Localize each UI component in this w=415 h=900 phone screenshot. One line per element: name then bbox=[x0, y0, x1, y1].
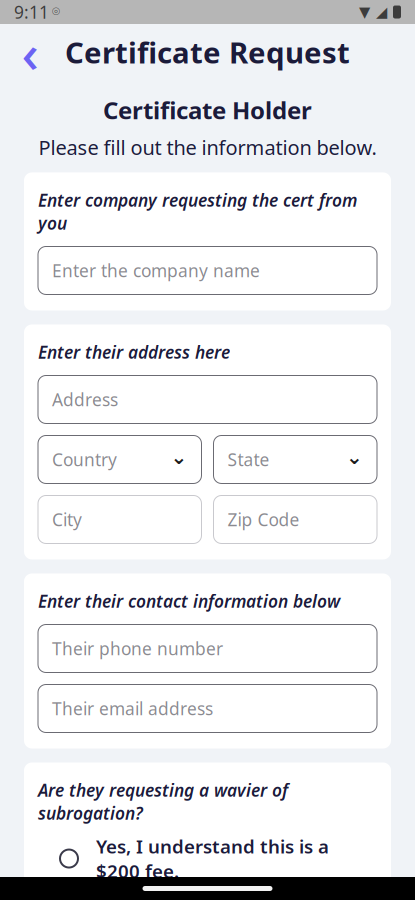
staticText: ⌄ bbox=[170, 446, 187, 468]
staticText: ⌄ bbox=[346, 446, 363, 468]
staticText: ⌾ bbox=[49, 5, 60, 18]
staticText: ◢ bbox=[376, 4, 387, 20]
staticText: Certificate Holder bbox=[103, 94, 312, 126]
button[interactable]: No. bbox=[38, 888, 377, 900]
staticText: Are they requesting a wavier of subrogat… bbox=[38, 778, 288, 824]
button[interactable]: Country bbox=[38, 435, 201, 483]
staticText: Yes, I understand this is a $200 fee. bbox=[96, 834, 329, 883]
staticText: Address bbox=[52, 388, 118, 411]
button[interactable]: State bbox=[213, 435, 377, 483]
button[interactable]: Their phone number bbox=[38, 624, 377, 672]
staticText: Enter the company name bbox=[52, 259, 260, 282]
staticText: Enter their address here bbox=[38, 340, 230, 363]
staticText: Their phone number bbox=[52, 637, 223, 660]
staticText: City bbox=[52, 508, 82, 531]
button[interactable]: Enter the company name bbox=[38, 246, 377, 294]
button[interactable]: Back bbox=[8, 30, 52, 74]
staticText: 9:11 bbox=[14, 0, 49, 23]
staticText: Please fill out the information below. bbox=[38, 134, 376, 160]
staticText: ▼ bbox=[359, 4, 370, 20]
staticText: Enter their contact information below bbox=[38, 589, 340, 612]
staticText: Their email address bbox=[52, 697, 213, 720]
button[interactable]: Address bbox=[38, 375, 377, 423]
staticText: ‹ bbox=[21, 17, 38, 87]
staticText: Enter company requesting the cert from y… bbox=[38, 188, 357, 234]
staticText: Country bbox=[52, 448, 117, 471]
button[interactable]: Yes, I understand this is a $200 fee. bbox=[38, 840, 377, 876]
button[interactable]: Zip Code bbox=[213, 495, 377, 543]
staticText: Zip Code bbox=[227, 508, 299, 531]
button[interactable]: City bbox=[38, 495, 201, 543]
button[interactable]: Their email address bbox=[38, 684, 377, 732]
staticText: State bbox=[227, 448, 269, 471]
staticText: Certificate Request bbox=[65, 32, 350, 71]
